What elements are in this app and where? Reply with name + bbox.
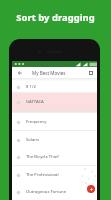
staticText: 8 1/2 <box>26 84 36 90</box>
staticText: Frequency <box>26 119 47 125</box>
button[interactable]: Delete list <box>86 68 95 77</box>
staticText: Outrageous Fortune <box>26 189 67 195</box>
staticText: Sort by dragging <box>16 11 95 23</box>
button[interactable]: 8 1/2 <box>12 78 97 96</box>
staticText: The Bicycle Thief <box>26 154 59 160</box>
button[interactable]: Solaris <box>12 131 97 149</box>
button[interactable]: The Bicycle Thief <box>12 148 97 166</box>
button[interactable]: Frequency <box>12 113 97 131</box>
button[interactable]: Outrageous Fortune <box>12 183 97 200</box>
staticText: Solaris <box>26 137 40 143</box>
button[interactable]: The Professional <box>12 166 97 184</box>
button[interactable]: Back <box>15 68 24 77</box>
staticText: My Best Movies <box>32 70 66 76</box>
button[interactable]: GATTACA <box>12 93 97 111</box>
staticText: The Professional <box>26 172 59 178</box>
button[interactable]: Add movie <box>87 185 95 193</box>
staticText: GATTACA <box>26 99 44 105</box>
